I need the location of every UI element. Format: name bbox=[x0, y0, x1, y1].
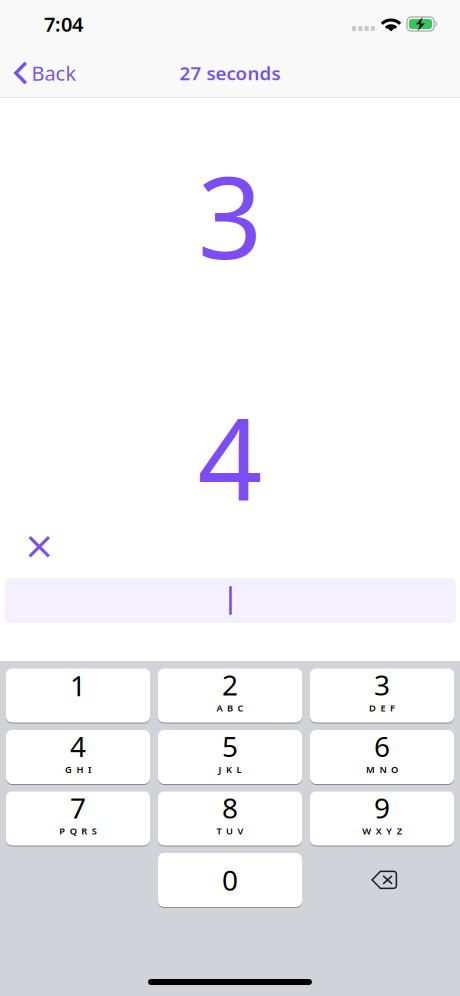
staticText: 5 bbox=[222, 727, 238, 765]
staticText: Z bbox=[397, 825, 402, 837]
staticText: U bbox=[226, 825, 233, 837]
staticText: C bbox=[237, 702, 243, 714]
button[interactable]: 3 bbox=[310, 668, 454, 723]
staticText: 27 seconds bbox=[179, 61, 280, 85]
staticText: O bbox=[391, 763, 398, 775]
staticText: V bbox=[237, 825, 243, 837]
staticText: Y bbox=[386, 825, 392, 837]
staticText: T bbox=[216, 825, 221, 837]
staticText: L bbox=[236, 763, 241, 775]
staticText: 3 bbox=[374, 666, 390, 703]
staticText: 6 bbox=[374, 727, 390, 765]
staticText: 7:04 bbox=[44, 11, 83, 37]
staticText: R bbox=[81, 825, 87, 837]
staticText: X bbox=[376, 825, 382, 837]
button[interactable]: 6 bbox=[310, 729, 454, 784]
button[interactable]: 9 bbox=[310, 791, 454, 846]
staticText: B bbox=[227, 702, 233, 714]
button[interactable]: 0 bbox=[158, 852, 302, 907]
staticText: 8 bbox=[222, 789, 238, 826]
staticText: 9 bbox=[374, 789, 390, 826]
staticText: I bbox=[88, 763, 91, 775]
staticText: W bbox=[362, 825, 371, 837]
staticText: F bbox=[390, 702, 395, 714]
staticText: 4 bbox=[70, 727, 86, 765]
staticText: 0 bbox=[222, 861, 238, 899]
button[interactable]: 1 bbox=[6, 668, 150, 723]
staticText: Q bbox=[70, 825, 77, 837]
button[interactable]: 5 bbox=[158, 729, 302, 784]
staticText: P bbox=[59, 825, 65, 837]
button[interactable]: 4 bbox=[6, 729, 150, 784]
button[interactable]: Back bbox=[0, 50, 89, 96]
staticText: S bbox=[92, 825, 97, 837]
staticText: H bbox=[76, 763, 83, 775]
staticText: 3 bbox=[197, 140, 262, 290]
button[interactable]: Delete bbox=[310, 852, 454, 907]
button[interactable]: 8 bbox=[158, 791, 302, 846]
staticText: 1 bbox=[70, 667, 86, 704]
staticText: E bbox=[380, 702, 385, 714]
staticText: K bbox=[226, 763, 232, 775]
staticText: M bbox=[366, 763, 375, 775]
staticText: 7 bbox=[70, 789, 86, 826]
staticText: Back bbox=[32, 60, 77, 86]
button[interactable]: 2 bbox=[158, 668, 302, 723]
staticText: D bbox=[369, 702, 376, 714]
staticText: G bbox=[65, 763, 72, 775]
staticText: 4 bbox=[197, 381, 262, 531]
staticText: N bbox=[379, 763, 386, 775]
button[interactable]: 7 bbox=[6, 791, 150, 846]
staticText: J bbox=[218, 763, 221, 775]
staticText: 2 bbox=[222, 666, 238, 703]
staticText: A bbox=[216, 702, 222, 714]
